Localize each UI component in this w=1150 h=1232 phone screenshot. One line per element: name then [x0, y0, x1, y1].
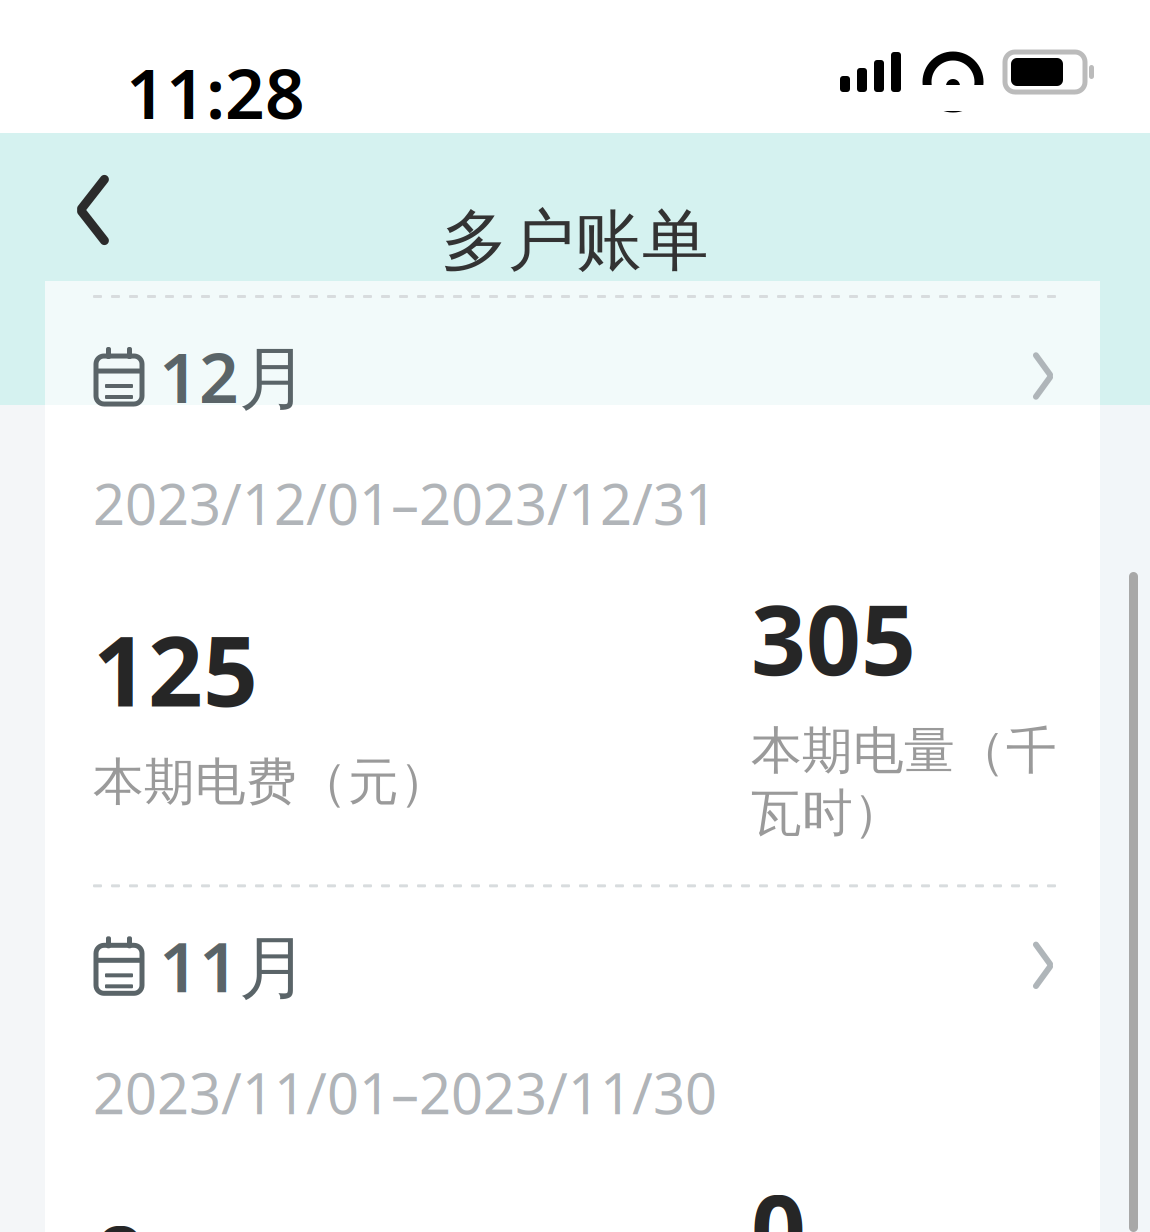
staticText: 11月: [159, 919, 308, 1011]
staticText: 2023/11/01–2023/11/30: [93, 1055, 717, 1130]
staticText: 11:28: [126, 46, 305, 138]
staticText: 125: [93, 605, 258, 733]
button[interactable]: 11月: [45, 927, 1100, 1003]
staticText: 2023/12/01–2023/12/31: [93, 466, 717, 540]
staticText: 本期电量（千瓦时）: [751, 720, 1057, 844]
button[interactable]: 返回: [38, 155, 148, 265]
staticText: 12月: [159, 330, 308, 422]
staticText: 多户账单: [441, 200, 709, 282]
staticText: 本期电费（元）: [93, 751, 450, 813]
staticText: 305: [751, 574, 916, 702]
staticText: 0: [93, 1195, 148, 1232]
staticText: 0: [751, 1164, 806, 1232]
button[interactable]: 12月: [45, 338, 1100, 414]
